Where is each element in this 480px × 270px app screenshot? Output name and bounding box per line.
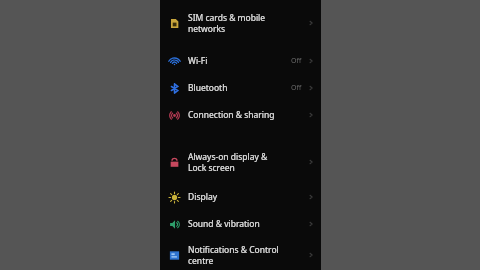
staticText: Connection & sharing: [188, 109, 304, 121]
button[interactable]: Connection and sharing: [160, 103, 321, 127]
staticText: Off: [291, 56, 302, 66]
button[interactable]: Bluetooth: [160, 76, 321, 100]
staticText: Notifications & Control centre: [188, 244, 304, 266]
button[interactable]: Display: [160, 185, 321, 209]
button[interactable]: Sound and vibration: [160, 212, 321, 236]
staticText: Off: [291, 83, 302, 93]
button[interactable]: SIM cards and mobile networks: [160, 8, 321, 38]
staticText: Always-on display & Lock screen: [188, 151, 304, 173]
button[interactable]: Always-on display and Lock screen: [160, 147, 321, 177]
button[interactable]: Notifications and Control centre: [160, 240, 321, 270]
staticText: Wi-Fi: [188, 55, 291, 67]
staticText: Display: [188, 191, 304, 203]
staticText: Bluetooth: [188, 82, 291, 94]
staticText: SIM cards & mobile networks: [188, 12, 304, 34]
staticText: Sound & vibration: [188, 218, 304, 230]
button[interactable]: Wi-Fi: [160, 49, 321, 73]
